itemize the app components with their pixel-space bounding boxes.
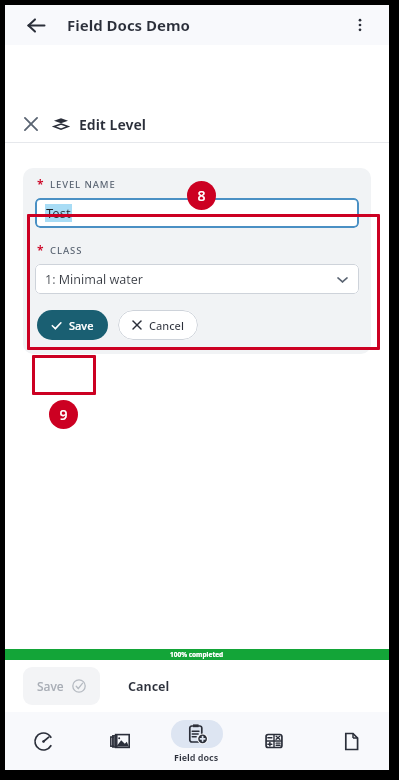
staticText: Cancel xyxy=(149,318,184,333)
button[interactable]: Cancel xyxy=(118,310,198,340)
staticText: Cancel xyxy=(128,678,170,695)
button[interactable]: Cancel xyxy=(122,670,176,703)
staticText: * xyxy=(37,242,44,258)
button[interactable]: Gallery xyxy=(81,712,158,770)
staticText: 8 xyxy=(197,186,206,205)
staticText: * xyxy=(37,176,44,192)
staticText: 9 xyxy=(59,405,68,424)
button[interactable]: Edit Level xyxy=(5,107,389,141)
staticText: Field Docs Demo xyxy=(67,15,190,35)
staticText: Field docs xyxy=(174,751,219,763)
staticText: 100% completed xyxy=(170,650,224,659)
staticText: LEVEL NAME xyxy=(50,178,116,191)
button[interactable]: Documents xyxy=(312,712,389,770)
staticText: CLASS xyxy=(50,244,83,257)
staticText: Save xyxy=(37,678,64,694)
button[interactable]: Field docs xyxy=(158,712,235,770)
button[interactable]: Test xyxy=(35,198,359,228)
button[interactable]: Save xyxy=(37,310,108,340)
button[interactable]: Calculator xyxy=(235,712,312,770)
button[interactable]: Back xyxy=(21,10,51,40)
button[interactable]: More options xyxy=(345,10,375,40)
button[interactable]: Save xyxy=(23,667,100,705)
staticText: 1: Minimal water xyxy=(45,271,144,288)
staticText: Test xyxy=(46,204,71,222)
staticText: Save xyxy=(69,318,94,333)
staticText: Edit Level xyxy=(79,115,147,134)
button[interactable]: 1: Minimal water xyxy=(35,264,359,294)
button[interactable]: Dashboard xyxy=(5,712,81,770)
